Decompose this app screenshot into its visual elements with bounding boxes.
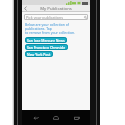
- button[interactable]: Home: [49, 114, 63, 122]
- button[interactable]: Recent apps: [70, 114, 84, 122]
- button[interactable]: Back: [29, 114, 43, 122]
- staticText: Pick your publications: [26, 15, 63, 20]
- staticText: My Publications: [40, 6, 72, 12]
- button[interactable]: San Jose Mercury News: [25, 37, 67, 43]
- button[interactable]: Back: [22, 5, 29, 12]
- staticText: San Jose Mercury News: [27, 38, 65, 43]
- staticText: San Francisco Chronicle: [27, 45, 66, 50]
- button[interactable]: New York Post: [25, 51, 53, 57]
- staticText: New York Post: [27, 52, 51, 57]
- other: Search: [83, 15, 87, 19]
- button[interactable]: San Francisco Chronicle: [25, 44, 68, 50]
- staticText: Below are your collection of publication…: [25, 22, 87, 35]
- button[interactable]: Pick your publications: [24, 14, 88, 20]
